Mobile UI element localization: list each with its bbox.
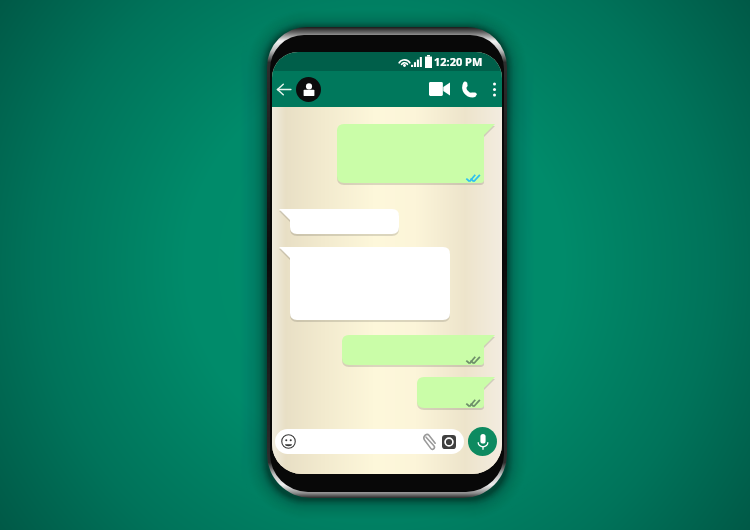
button[interactable] [279, 247, 450, 320]
button[interactable] [337, 124, 495, 183]
button[interactable]: Video call [426, 76, 452, 102]
button[interactable] [275, 429, 464, 454]
button[interactable]: Record voice message [468, 427, 497, 456]
staticText: 12:20 PM [434, 54, 483, 69]
button[interactable]: Contact profile [296, 77, 321, 102]
button[interactable] [342, 335, 495, 365]
button[interactable]: Back [273, 78, 295, 100]
button[interactable]: More options [486, 76, 502, 102]
button[interactable] [279, 209, 399, 234]
button[interactable] [417, 377, 495, 408]
button[interactable]: Voice call [459, 76, 481, 102]
